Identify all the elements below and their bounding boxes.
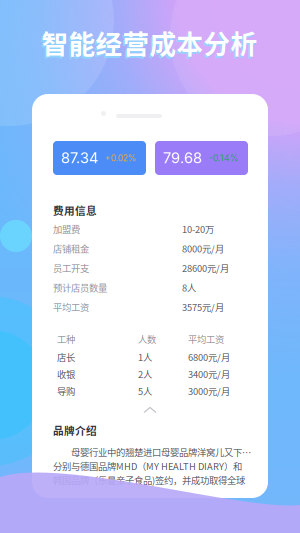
staticText: 3400元/月	[188, 367, 230, 381]
staticText: 加盟费	[53, 222, 80, 236]
staticText: 87.34	[61, 149, 98, 167]
staticText: 8人	[182, 281, 196, 294]
staticText: 导购	[57, 384, 75, 398]
staticText: 智能经营成本分析	[40, 25, 256, 64]
staticText: 品牌介绍	[53, 422, 97, 438]
staticText: 3575元/月	[182, 300, 224, 314]
staticText: 1人	[138, 350, 152, 364]
staticText: 员工开支	[53, 261, 89, 275]
staticText: +0.02%	[105, 153, 137, 163]
staticText: 28600元/月	[182, 261, 229, 275]
staticText: 平均工资	[53, 300, 89, 314]
staticText: 10-20万	[182, 222, 214, 236]
staticText: 店铺租金	[53, 242, 89, 255]
button[interactable]: 87.34	[53, 141, 146, 175]
staticText: 3000元/月	[188, 384, 230, 398]
staticText: 79.68	[163, 149, 202, 167]
staticText: 收银	[57, 367, 75, 381]
staticText: 平均工资	[188, 332, 224, 346]
button[interactable]: 收起	[130, 401, 170, 419]
staticText: 费用信息	[53, 202, 97, 218]
button[interactable]: 79.68	[155, 141, 248, 175]
staticText: -0.14%	[209, 153, 239, 163]
staticText: 8000元/月	[182, 242, 224, 255]
staticText: 5人	[138, 384, 152, 398]
staticText: 工种	[57, 332, 75, 346]
staticText: 分别与德国品牌MHD（MY HEALTH DIARY）和	[53, 459, 242, 473]
staticText: 预计店员数量	[53, 281, 107, 294]
staticText: 人数	[138, 332, 156, 346]
staticText: 智能经营成本分析	[41, 23, 257, 62]
staticText: 母婴行业中的翘楚进口母婴品牌洋窝儿又下一城，	[53, 445, 259, 459]
staticText: 韩国品牌（乐曼亲子食品)签约，并成功取得全球	[53, 473, 245, 487]
staticText: 2人	[138, 367, 152, 381]
staticText: 6800元/月	[188, 350, 230, 364]
staticText: 店长	[57, 350, 75, 364]
